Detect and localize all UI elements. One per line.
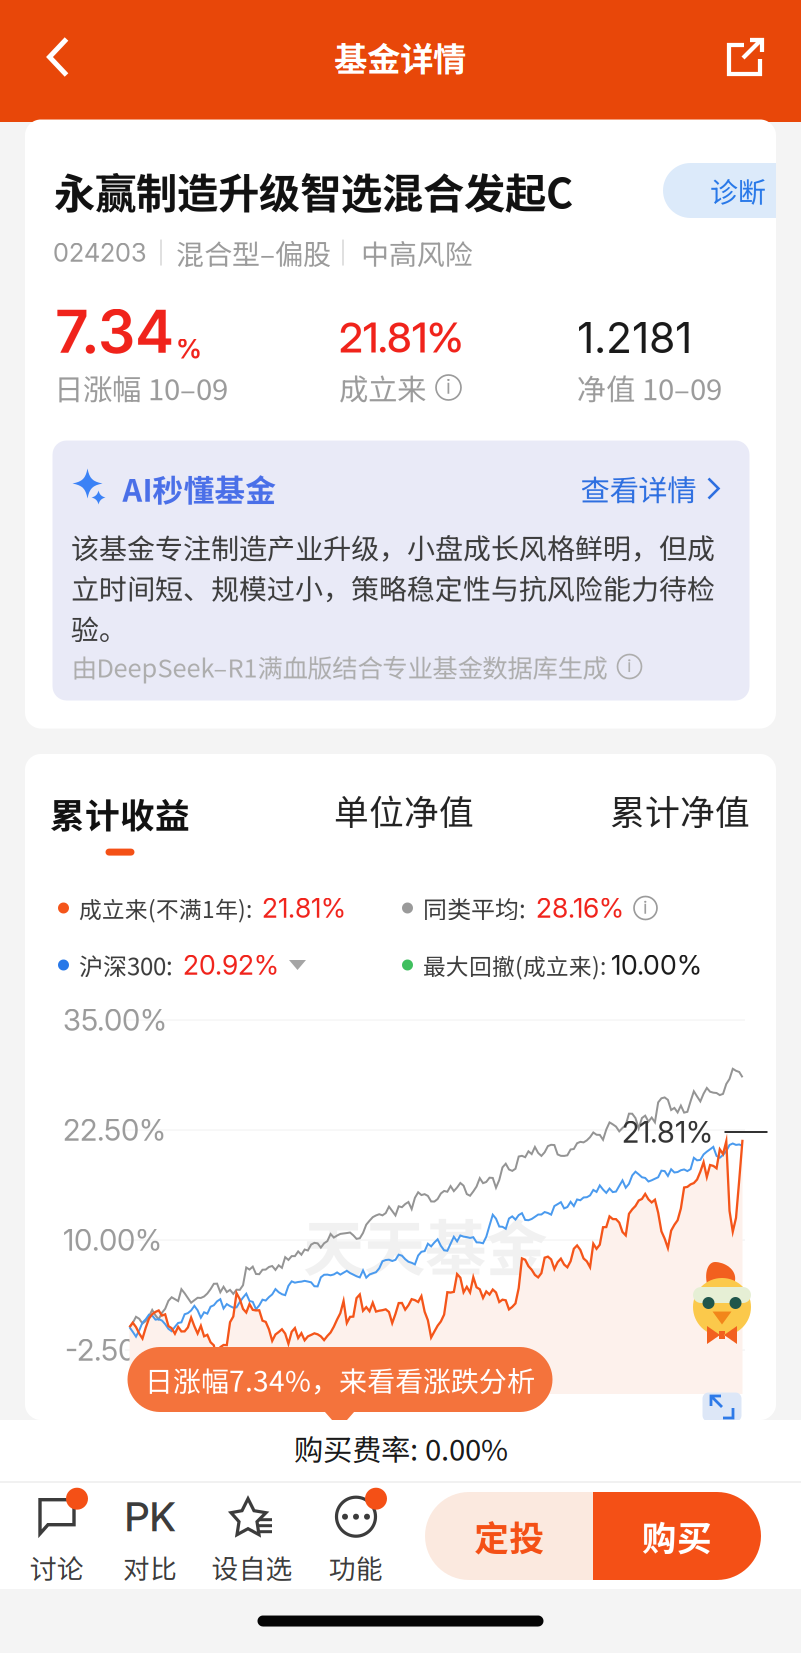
staticText: 永赢制造升级智选混合发起C [54,161,573,220]
staticText: 单位净值 [334,785,474,835]
staticText: 10.00% [611,949,702,981]
button[interactable]: PK [102,1493,198,1588]
staticText: 设自选 [211,1548,292,1586]
staticText: i [643,896,648,918]
staticText: 讨论 [30,1548,84,1586]
staticText: 天天基金 [303,1200,547,1288]
staticText: % [176,333,202,365]
staticText: 基金详情 [334,33,466,81]
staticText: 购买费率: 0.00% [294,1427,508,1469]
staticText: PK [124,1492,175,1541]
button[interactable]: 购买 [593,1492,761,1580]
button[interactable]: 功能 [308,1493,404,1588]
button[interactable]: 返回 [12,7,104,107]
button[interactable]: 查看详情 [580,464,720,512]
staticText: 同类平均: [423,891,526,925]
staticText: 功能 [329,1548,383,1586]
staticText: 21.81% [262,892,346,924]
staticText: 024203 [53,237,147,268]
staticText: 日涨幅 10–09 [54,366,228,409]
button[interactable]: 累计净值 [580,784,780,836]
staticText: 累计收益 [50,788,190,839]
button[interactable]: 分享 [700,7,790,107]
staticText: 10.00% [63,1222,162,1258]
staticText: 净值 10–09 [577,366,722,409]
staticText: 中高风险 [361,232,473,273]
staticText: 查看详情 [580,467,696,510]
staticText: 该基金专注制造产业升级，小盘成长风格鲜明，但成立时间短、规模过小，策略稳定性与抗… [71,526,715,648]
button[interactable]: 累计收益 [20,780,220,864]
staticText: 21.81% [339,312,463,362]
button[interactable]: 设自选 [204,1493,300,1588]
staticText: i [627,654,632,677]
staticText: 购买 [642,1511,712,1561]
staticText: 22.50% [63,1112,166,1148]
staticText: 定投 [474,1511,544,1561]
staticText: 最大回撤(成立来): [423,949,606,981]
staticText: 由DeepSeek–R1满血版结合专业基金数据库生成 [71,648,607,685]
staticText: 1.2181 [577,312,692,363]
staticText: 日涨幅7.34%，来看看涨跌分析 [145,1359,535,1400]
button[interactable]: 诊断 [663,163,801,218]
button[interactable]: 定投 [425,1492,593,1580]
staticText: i [446,374,451,399]
staticText: 混合型–偏股 [176,232,331,273]
staticText: 累计净值 [610,785,750,835]
staticText: 成立来 [339,366,426,409]
staticText: 沪深300: [79,948,173,982]
staticText: AI秒懂基金 [122,466,276,511]
staticText: 35.00% [63,1002,167,1038]
button[interactable]: 单位净值 [304,784,504,836]
staticText: 20.92% [183,949,279,981]
button[interactable]: 讨论 [9,1493,105,1588]
staticText: 28.16% [536,892,624,924]
staticText: 诊断 [710,170,766,211]
staticText: 对比 [123,1548,177,1586]
staticText: -2.50% [65,1332,163,1368]
staticText: 成立来(不满1年): [79,892,252,924]
staticText: 7.34 [55,296,174,367]
button[interactable]: 全屏 [702,1392,741,1421]
staticText: 21.81% [622,1114,713,1150]
